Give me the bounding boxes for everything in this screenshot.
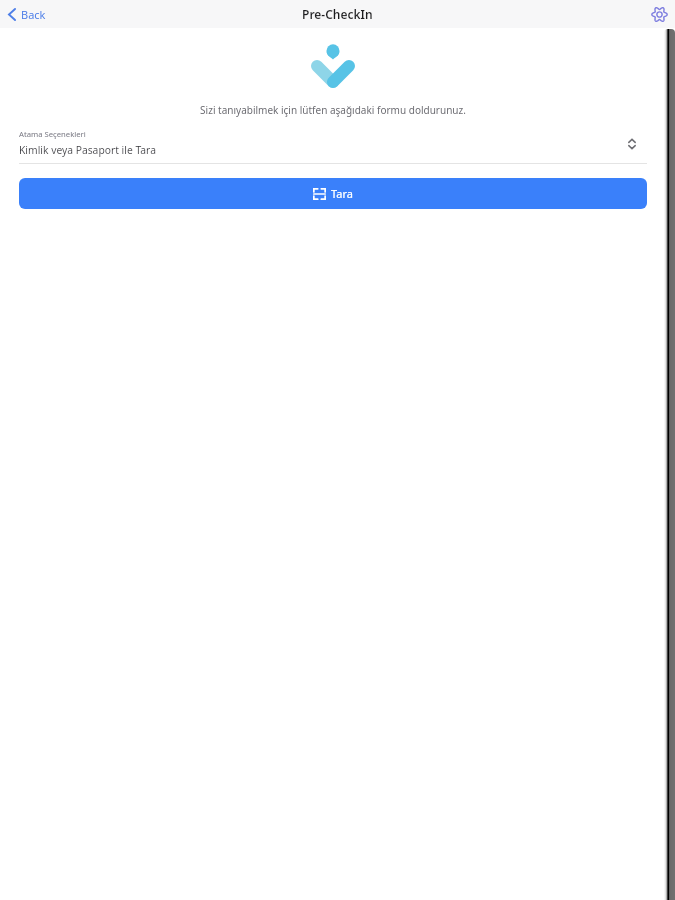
staticText: Kimlik veya Pasaport ile Tara (19, 143, 156, 157)
staticText: Pre-CheckIn (302, 6, 373, 22)
button[interactable]: Tara (19, 178, 647, 209)
button[interactable]: Settings (650, 0, 668, 28)
staticText: Tara (331, 186, 353, 201)
button[interactable]: Change option (621, 132, 643, 156)
staticText: Sizi tanıyabilmek için lütfen aşağıdaki … (0, 103, 666, 117)
button[interactable]: Atama Seçenekleri (0, 129, 666, 164)
staticText: Atama Seçenekleri (19, 129, 86, 139)
staticText: Back (21, 7, 46, 22)
button[interactable]: Back (0, 0, 56, 28)
